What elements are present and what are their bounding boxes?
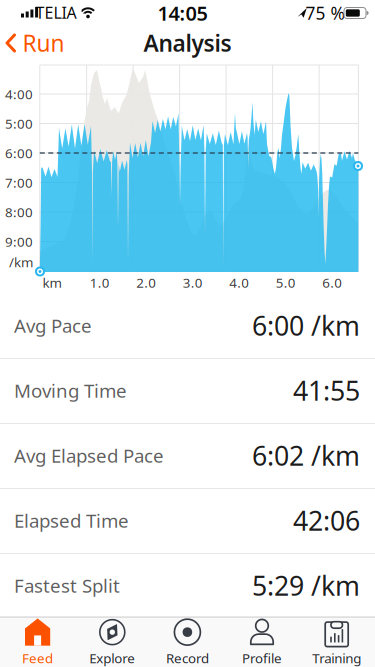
staticText: 1.0 — [90, 274, 110, 291]
staticText: Training — [312, 649, 361, 667]
staticText: Fastest Split — [14, 573, 120, 598]
staticText: Avg Elapsed Pace — [14, 443, 164, 468]
staticText: 5.0 — [276, 274, 296, 291]
button[interactable]: Explore — [89, 618, 135, 667]
staticText: Explore — [89, 649, 135, 667]
staticText: TELIA — [35, 2, 76, 23]
staticText: Analysis — [143, 28, 231, 58]
staticText: 4:00 — [5, 85, 33, 103]
staticText: 8:00 — [5, 203, 33, 221]
staticText: 5:29 /km — [252, 568, 360, 603]
button[interactable]: Feed — [22, 618, 53, 667]
staticText: Feed — [22, 649, 53, 667]
staticText: 3.0 — [183, 274, 203, 291]
button[interactable]: Run — [5, 28, 64, 58]
staticText: 42:06 — [293, 503, 360, 538]
staticText: 14:05 — [157, 0, 207, 26]
staticText: 4.0 — [229, 274, 249, 291]
staticText: Elapsed Time — [14, 508, 129, 533]
staticText: Moving Time — [14, 378, 127, 403]
staticText: 6.0 — [322, 274, 342, 291]
staticText: 6:00 /km — [252, 308, 360, 343]
staticText: 9:00 — [5, 233, 33, 250]
staticText: Profile — [242, 649, 282, 667]
button[interactable]: Training — [312, 618, 361, 667]
staticText: /km — [9, 253, 33, 271]
button[interactable]: Profile — [242, 618, 282, 667]
staticText: 6:02 /km — [252, 438, 360, 473]
staticText: Record — [166, 649, 209, 667]
staticText: 75 % — [305, 1, 344, 24]
staticText: 5:00 — [5, 115, 33, 132]
button[interactable]: Record — [166, 618, 209, 667]
staticText: km — [42, 274, 61, 291]
staticText: 2.0 — [136, 274, 156, 291]
staticText: Run — [22, 28, 64, 58]
staticText: 41:55 — [293, 373, 360, 408]
staticText: 7:00 — [5, 174, 33, 191]
staticText: Avg Pace — [14, 313, 92, 338]
staticText: 6:00 — [5, 144, 33, 162]
